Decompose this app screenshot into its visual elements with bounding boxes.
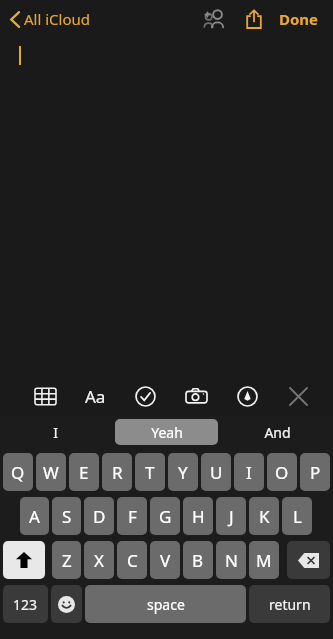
staticText: E — [79, 461, 89, 484]
button[interactable] — [0, 38, 333, 376]
button[interactable]: K — [249, 497, 279, 535]
button[interactable]: J — [216, 497, 246, 535]
button[interactable]: Checklist — [128, 379, 162, 413]
button[interactable]: H — [183, 497, 213, 535]
staticText: Done — [279, 9, 319, 29]
button[interactable]: Backspace — [287, 541, 330, 579]
button[interactable]: R — [102, 453, 132, 491]
staticText: L — [293, 505, 302, 528]
staticText: C — [127, 549, 138, 572]
staticText: W — [43, 461, 59, 484]
staticText: T — [145, 461, 155, 484]
button[interactable]: Table — [28, 379, 62, 413]
staticText: All iCloud — [24, 9, 91, 29]
button[interactable]: W — [36, 453, 66, 491]
button[interactable]: A — [20, 497, 49, 535]
button[interactable]: return — [249, 585, 330, 623]
button[interactable]: And — [222, 416, 333, 448]
staticText: return — [269, 595, 311, 614]
button[interactable]: Shift — [3, 541, 45, 579]
button[interactable]: 123 — [3, 585, 48, 623]
staticText: H — [192, 505, 205, 528]
button[interactable]: V — [150, 541, 180, 579]
button[interactable]: C — [117, 541, 147, 579]
staticText: O — [275, 461, 289, 484]
button[interactable]: G — [150, 497, 180, 535]
staticText: D — [93, 505, 106, 528]
staticText: Y — [178, 461, 188, 484]
button[interactable]: O — [267, 453, 297, 491]
button[interactable]: U — [201, 453, 231, 491]
staticText: Yeah — [151, 423, 183, 442]
staticText: 123 — [13, 595, 38, 614]
button[interactable]: I — [0, 416, 111, 448]
staticText: R — [112, 461, 123, 484]
staticText: I — [53, 423, 58, 442]
staticText: I — [246, 461, 252, 484]
staticText: U — [210, 461, 223, 484]
button[interactable]: Close — [281, 379, 315, 413]
button[interactable]: T — [135, 453, 165, 491]
staticText: G — [159, 505, 172, 528]
button[interactable]: D — [84, 497, 114, 535]
button[interactable]: F — [117, 497, 147, 535]
button[interactable]: Done — [275, 3, 323, 35]
button[interactable]: Camera — [179, 379, 213, 413]
button[interactable]: Yeah — [115, 419, 218, 445]
staticText: J — [229, 505, 234, 528]
staticText: V — [160, 549, 171, 572]
staticText: S — [62, 505, 72, 528]
staticText: space — [147, 595, 185, 614]
staticText: P — [310, 461, 321, 484]
button[interactable]: Z — [52, 541, 81, 579]
staticText: B — [192, 549, 204, 572]
staticText: And — [264, 423, 291, 442]
staticText: X — [94, 549, 104, 572]
button[interactable]: X — [84, 541, 114, 579]
button[interactable]: Y — [168, 453, 198, 491]
staticText: N — [225, 549, 238, 572]
button[interactable]: All iCloud — [6, 5, 95, 33]
button[interactable]: Aa — [78, 379, 112, 413]
button[interactable]: Q — [3, 453, 33, 491]
staticText: F — [128, 505, 137, 528]
button[interactable]: Emoji — [51, 585, 82, 623]
button[interactable]: Share — [237, 2, 271, 36]
button[interactable]: P — [300, 453, 330, 491]
button[interactable]: E — [69, 453, 99, 491]
button[interactable]: Add People — [197, 2, 231, 36]
button[interactable]: M — [249, 541, 279, 579]
button[interactable]: N — [216, 541, 246, 579]
staticText: K — [259, 505, 270, 528]
staticText: Aa — [85, 385, 106, 408]
button[interactable]: S — [52, 497, 81, 535]
button[interactable]: Markup — [230, 379, 264, 413]
button[interactable]: B — [183, 541, 213, 579]
button[interactable]: I — [234, 453, 264, 491]
button[interactable]: L — [282, 497, 312, 535]
staticText: A — [29, 505, 40, 528]
staticText: Z — [62, 549, 72, 572]
staticText: Q — [11, 461, 25, 484]
button[interactable]: space — [85, 585, 246, 623]
staticText: M — [256, 549, 272, 572]
